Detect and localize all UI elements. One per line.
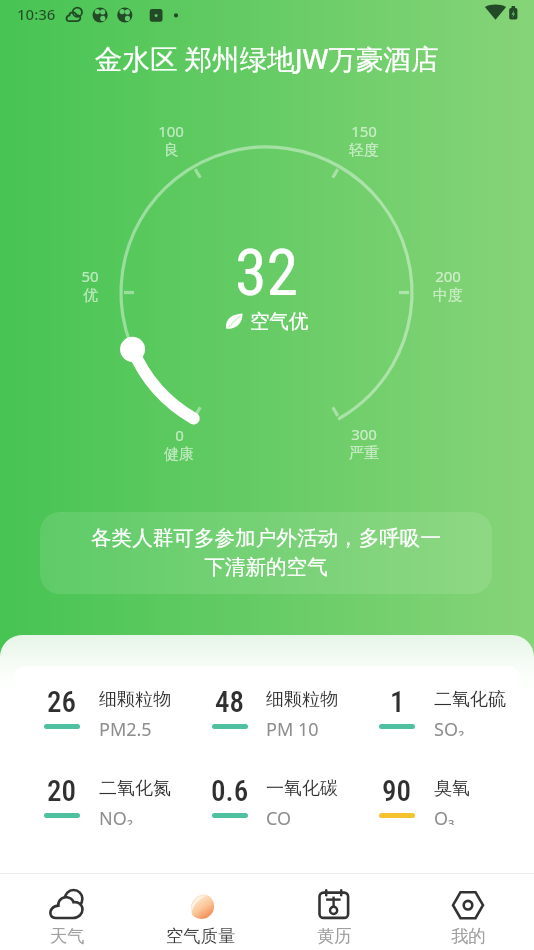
staticText: PM2.5 <box>99 717 152 736</box>
staticText: O₃ <box>434 806 455 825</box>
staticText: 200 <box>435 266 461 286</box>
staticText: SO₂ <box>434 717 465 736</box>
staticText: 300 <box>351 424 377 444</box>
staticText: 各类人群可多参加户外活动，多呼吸一下清新的空气 <box>86 525 446 581</box>
staticText: 90 <box>382 774 412 808</box>
staticText: 100 <box>158 121 184 141</box>
staticText: 10:36 <box>17 4 56 24</box>
staticText: 轻度 <box>349 141 379 160</box>
staticText: 良 <box>164 141 179 160</box>
staticText: 一氧化碳 <box>266 777 338 800</box>
staticText: 二氧化硫 <box>434 688 506 711</box>
staticText: 0 <box>175 425 184 445</box>
staticText: 优 <box>83 286 98 305</box>
staticText: PM 10 <box>266 717 319 736</box>
button[interactable]: 黄历 <box>267 873 401 950</box>
staticText: 健康 <box>164 445 194 464</box>
staticText: 金水区 郑州绿地JW万豪酒店 <box>95 40 439 78</box>
staticText: 1 <box>390 685 405 719</box>
button[interactable]: 空气质量 <box>134 873 268 950</box>
staticText: 天气 <box>50 925 85 947</box>
staticText: 32 <box>235 236 299 311</box>
staticText: 空气质量 <box>166 925 236 947</box>
staticText: 细颗粒物 <box>266 688 338 711</box>
staticText: 二氧化氮 <box>99 777 171 800</box>
staticText: CO <box>266 806 292 825</box>
staticText: 我的 <box>451 925 486 947</box>
staticText: 26 <box>47 685 77 719</box>
staticText: 48 <box>215 685 245 719</box>
button[interactable]: 天气 <box>0 873 134 950</box>
staticText: 空气优 <box>250 309 309 334</box>
staticText: NO₂ <box>99 806 134 825</box>
staticText: 中度 <box>433 286 463 305</box>
button[interactable]: 我的 <box>401 873 534 950</box>
staticText: 150 <box>351 121 377 141</box>
staticText: 0.6 <box>211 774 249 808</box>
button[interactable]: 各类人群可多参加户外活动，多呼吸一下清新的空气 <box>40 512 492 594</box>
staticText: 严重 <box>349 444 379 463</box>
staticText: 细颗粒物 <box>99 688 171 711</box>
staticText: 20 <box>47 774 77 808</box>
staticText: 50 <box>81 266 99 286</box>
staticText: 臭氧 <box>434 777 470 800</box>
staticText: 黄历 <box>317 925 352 947</box>
